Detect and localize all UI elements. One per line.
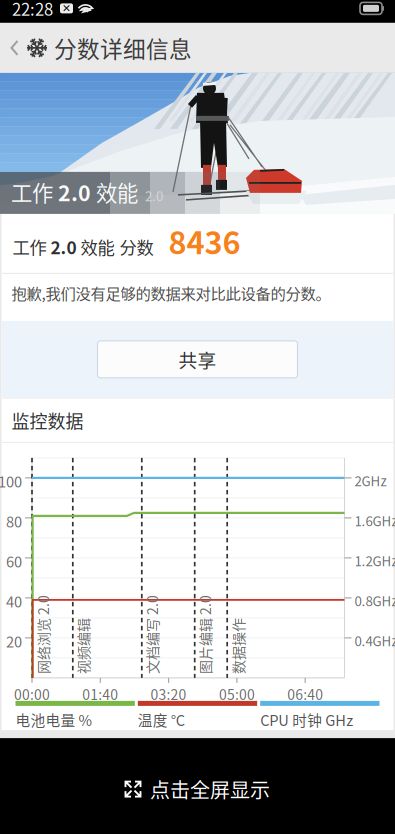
staticText: 01:40 xyxy=(82,684,118,704)
staticText: 8436 xyxy=(168,219,240,263)
staticText: 分数 xyxy=(119,234,153,259)
staticText: 分数详细信息 xyxy=(54,31,192,64)
staticText: 40 xyxy=(6,590,22,612)
button[interactable]: 点击全屏显示 xyxy=(0,738,395,834)
staticText: 效能 xyxy=(80,234,114,259)
staticText: 数据操作 xyxy=(200,626,256,646)
staticText: ✕ xyxy=(62,2,71,15)
staticText: 20 xyxy=(6,630,22,652)
button[interactable]: 共享 xyxy=(97,341,297,378)
staticText: 80 xyxy=(6,510,22,532)
staticText: 2GHz xyxy=(354,471,386,490)
staticText: 2.0 xyxy=(145,186,163,205)
staticText: 工作 xyxy=(12,234,46,259)
staticText: 2.0 xyxy=(58,176,91,207)
staticText: 60 xyxy=(6,550,22,572)
staticText: 效能 xyxy=(96,176,138,207)
staticText: 温度 °C xyxy=(138,709,185,730)
staticText: 抱歉,我们没有足够的数据来对比此设备的分数。 xyxy=(11,282,330,304)
staticText: 03:20 xyxy=(151,684,187,704)
staticText: 06:40 xyxy=(287,684,323,704)
staticText: 工作 xyxy=(11,176,53,207)
staticText: CPU 时钟 GHz xyxy=(260,709,353,730)
staticText: 共享 xyxy=(178,346,216,373)
button[interactable]: 返回 xyxy=(0,23,54,73)
staticText: 2.0 xyxy=(50,234,76,259)
staticText: 0.4GHz xyxy=(354,631,395,650)
staticText: 电池电量 % xyxy=(15,709,92,730)
staticText: 网络浏览 2.0 xyxy=(5,626,84,646)
staticText: 100 xyxy=(0,470,22,492)
staticText: 文档编写 2.0 xyxy=(114,626,193,646)
staticText: 00:00 xyxy=(14,684,50,704)
staticText: 视频编辑 xyxy=(45,626,101,646)
staticText: 05:00 xyxy=(219,684,255,704)
staticText: 图片编辑 2.0 xyxy=(167,626,246,646)
staticText: 0.8GHz xyxy=(354,591,395,610)
staticText: 点击全屏显示 xyxy=(150,775,270,804)
staticText: 1.2GHz xyxy=(354,551,395,570)
staticText: 1.6GHz xyxy=(354,511,395,530)
staticText: 监控数据 xyxy=(11,407,83,433)
staticText: 22:28 xyxy=(12,0,53,20)
